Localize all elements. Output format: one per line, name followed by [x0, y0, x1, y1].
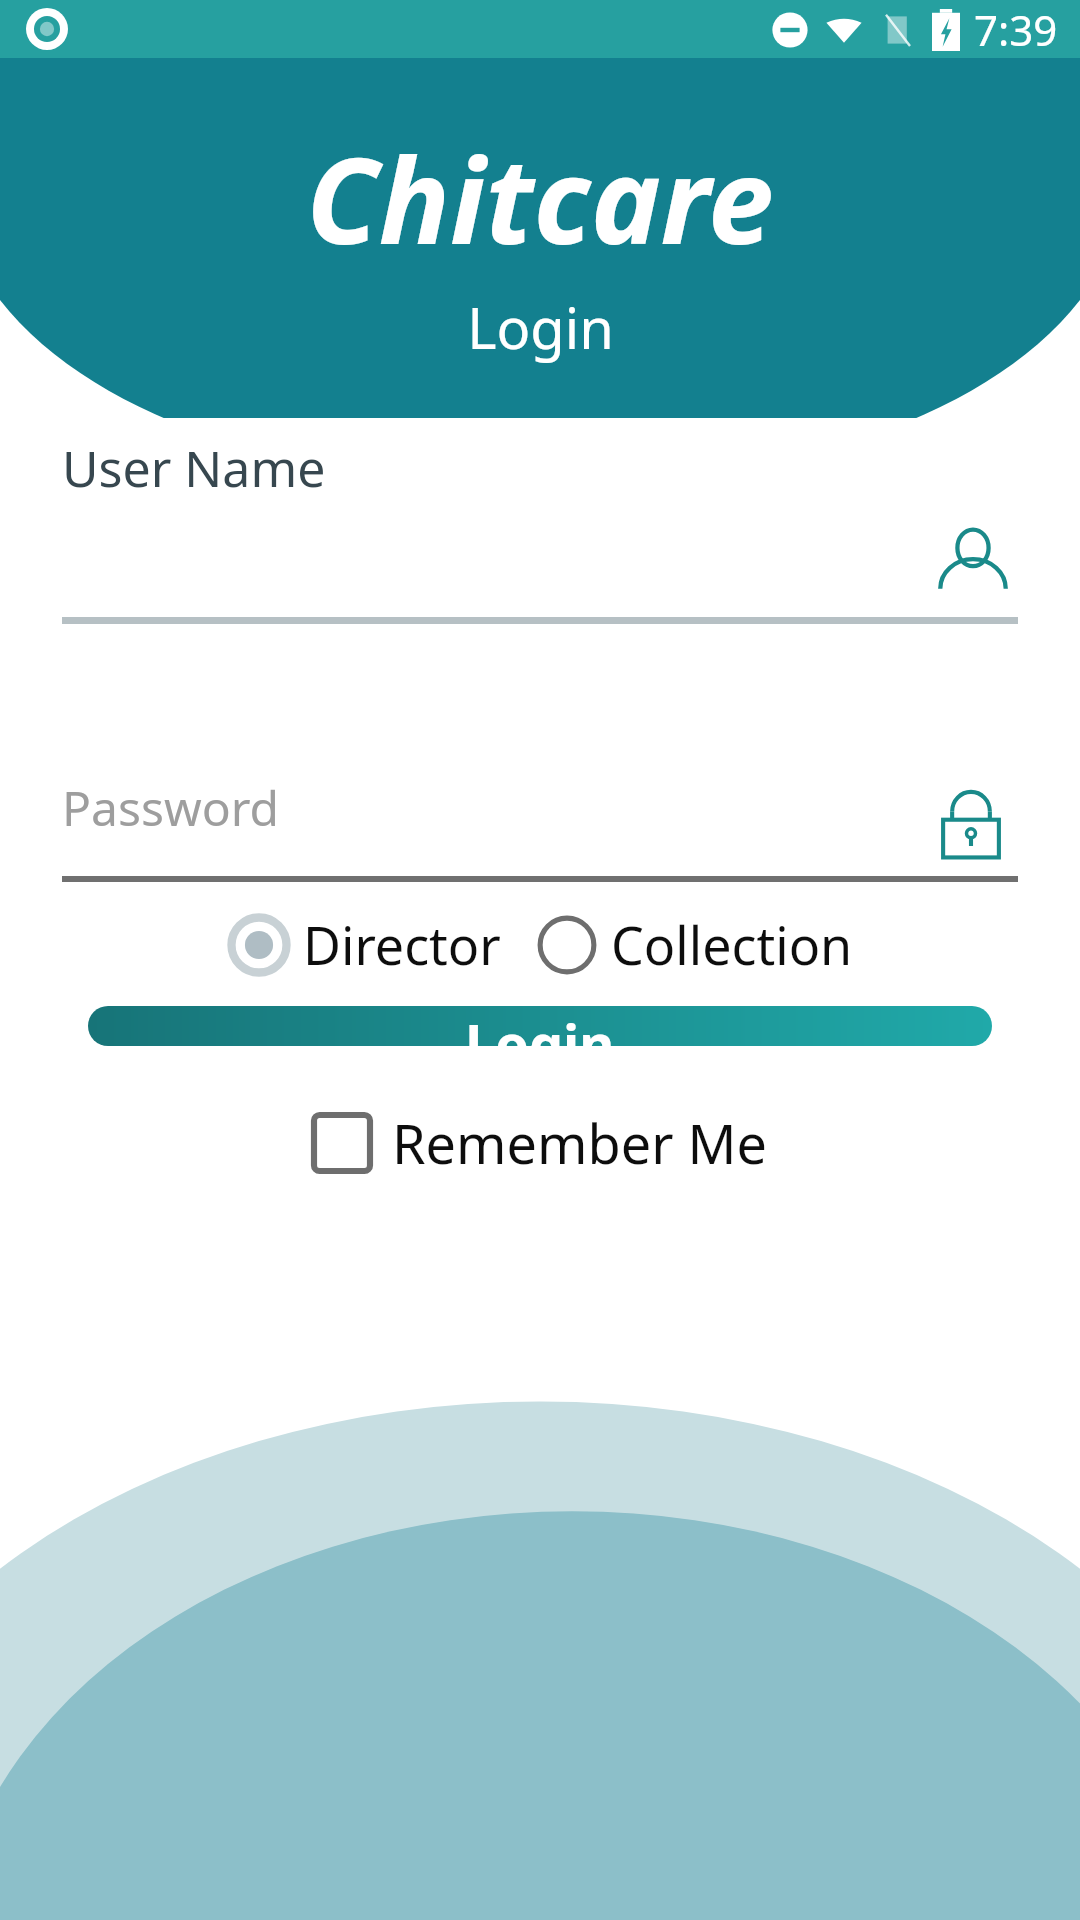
button[interactable]: Remember Me — [306, 1098, 775, 1188]
staticText: User Name — [62, 434, 326, 502]
button[interactable]: Password — [36, 680, 1044, 882]
staticText: 7:39 — [974, 1, 1058, 58]
staticText: Password — [62, 775, 280, 840]
other: Password — [930, 782, 1012, 864]
staticText: Chitcare — [306, 118, 774, 279]
staticText: Director — [303, 909, 501, 980]
button[interactable]: User Name — [36, 418, 1044, 680]
other: User name — [934, 528, 1012, 606]
staticText: Login — [467, 289, 614, 365]
button[interactable]: Login — [88, 1006, 992, 1046]
staticText: Remember Me — [392, 1106, 767, 1180]
staticText: Collection — [611, 909, 853, 980]
button[interactable]: Collection — [531, 909, 857, 980]
button[interactable]: Director — [223, 909, 505, 980]
staticText: Login — [465, 1006, 615, 1046]
